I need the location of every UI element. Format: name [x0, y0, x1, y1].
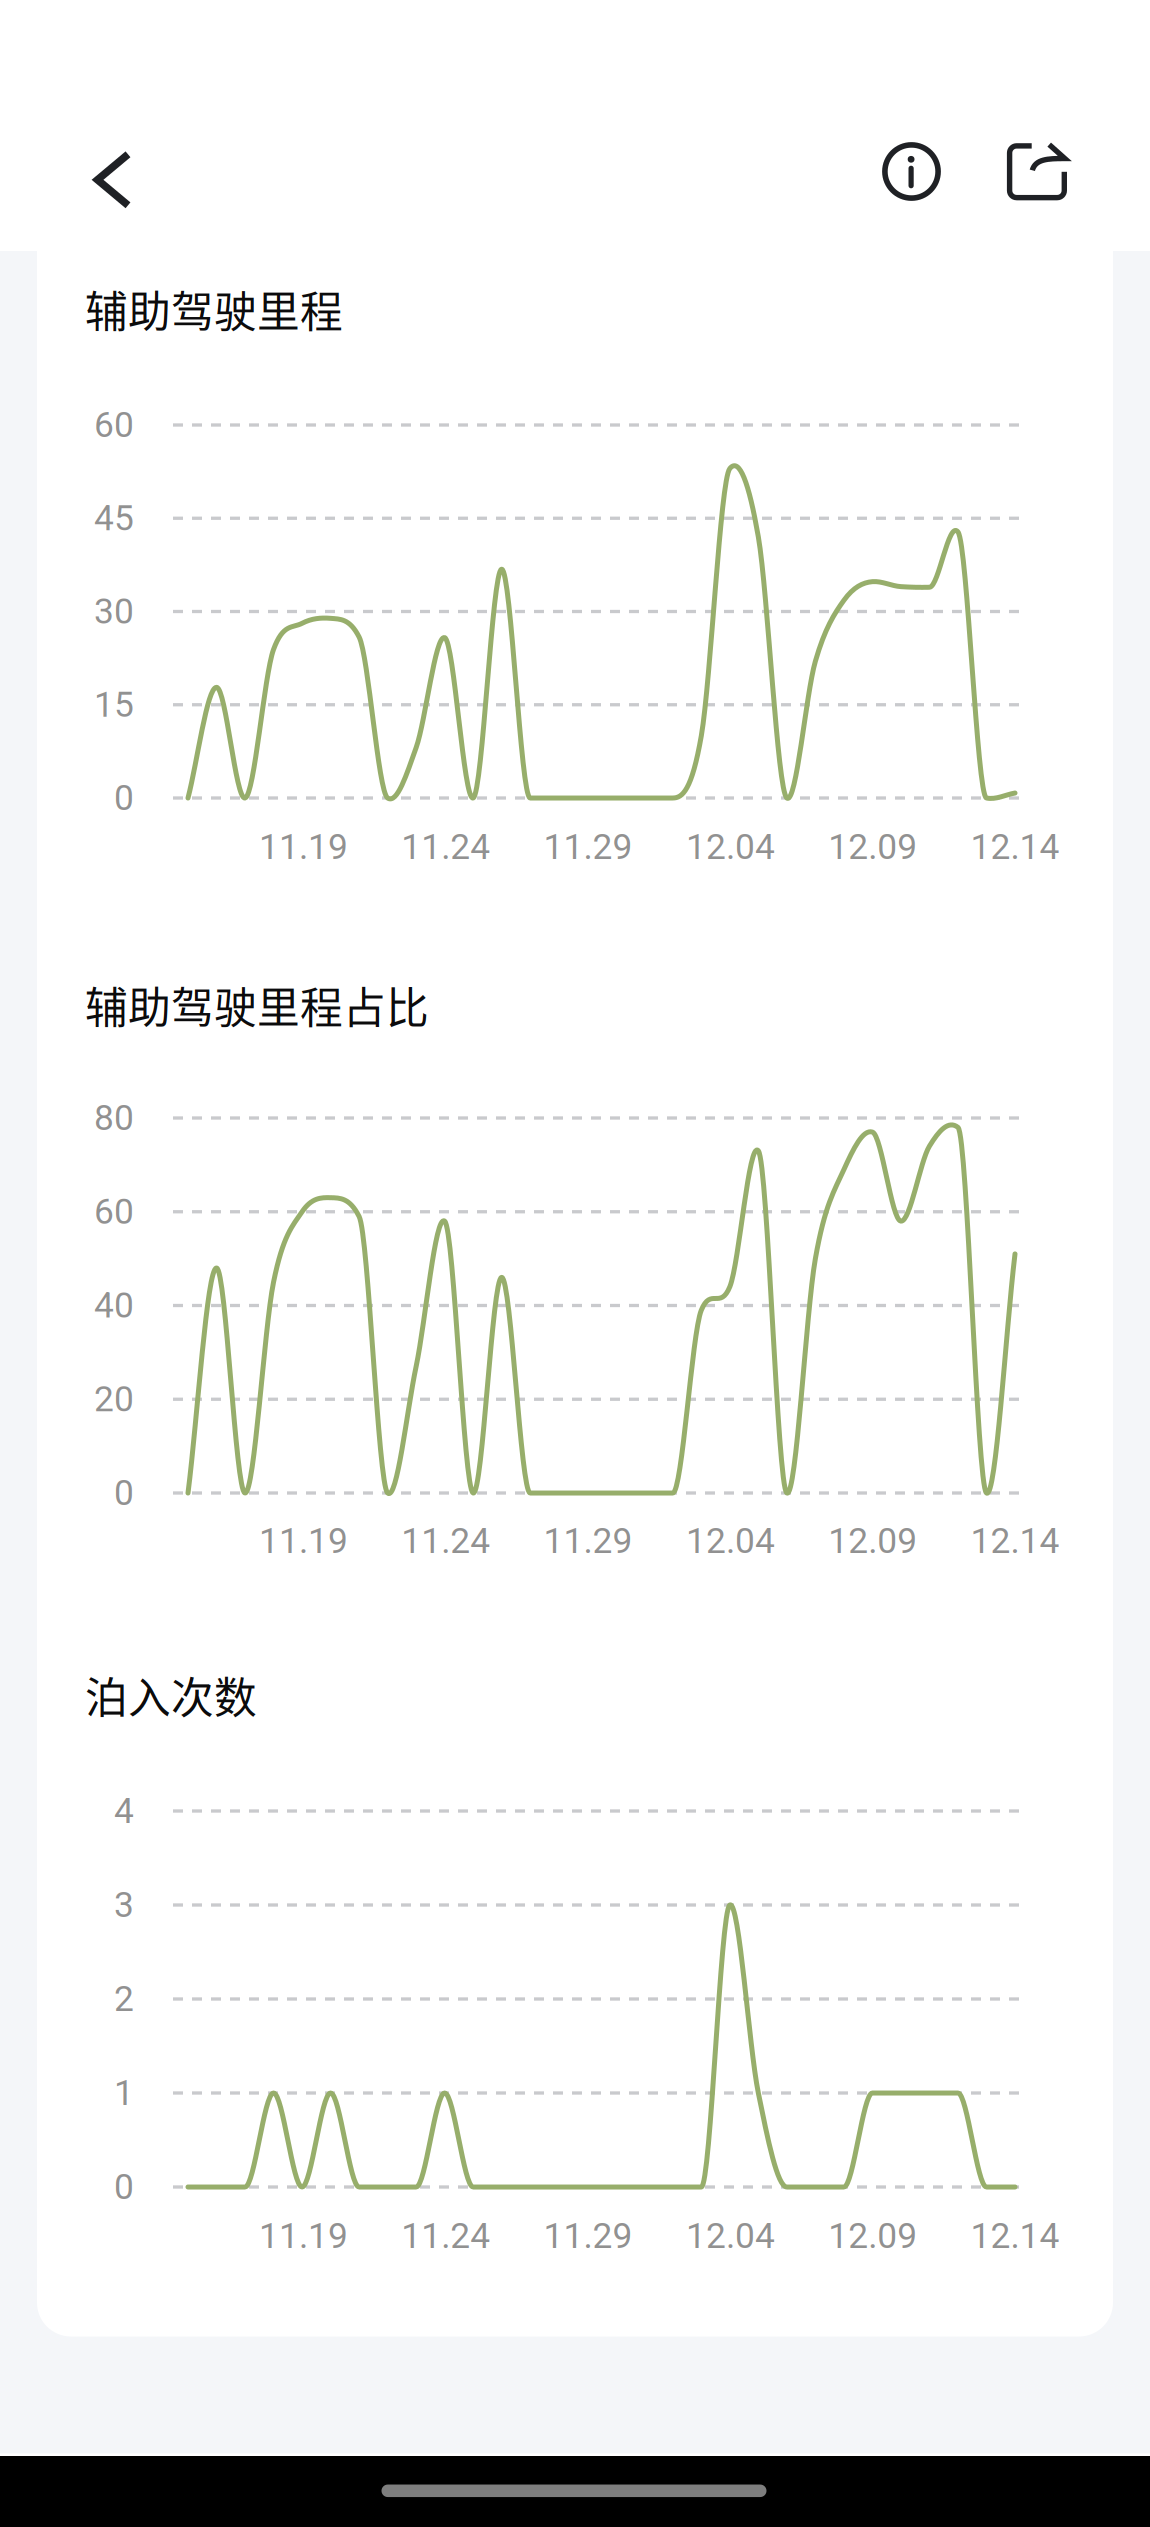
staticText: 40 — [94, 1285, 134, 1326]
staticText: 11.24 — [401, 826, 490, 868]
staticText: 45 — [94, 497, 134, 539]
staticText: 泊入次数 — [85, 1664, 257, 1726]
staticText: 60 — [94, 1191, 134, 1232]
staticText: 1 — [114, 2072, 134, 2114]
staticText: 11.24 — [401, 1520, 490, 1562]
staticText: 20 — [94, 1378, 134, 1420]
staticText: 15 — [94, 684, 134, 725]
staticText: 辅助驾驶里程占比 — [85, 974, 429, 1036]
staticText: 12.09 — [828, 826, 917, 868]
staticText: 12.14 — [970, 2215, 1059, 2257]
staticText: 11.19 — [259, 2215, 348, 2257]
staticText: 11.19 — [259, 826, 348, 868]
staticText: 12.04 — [686, 2215, 775, 2257]
staticText: 12.09 — [828, 2215, 917, 2257]
button[interactable]: Information — [881, 141, 941, 201]
staticText: 3 — [114, 1884, 134, 1926]
button[interactable]: Back — [93, 150, 133, 209]
staticText: 80 — [94, 1097, 134, 1139]
button[interactable]: Share — [1006, 143, 1068, 201]
staticText: 0 — [114, 777, 134, 819]
staticText: 11.24 — [401, 2215, 490, 2257]
staticText: 4 — [114, 1790, 134, 1832]
staticText: 60 — [94, 404, 134, 446]
staticText: 辅助驾驶里程 — [85, 278, 343, 340]
staticText: 12.14 — [970, 826, 1059, 868]
staticText: 11.29 — [544, 826, 633, 868]
staticText: 2 — [114, 1978, 134, 2020]
staticText: 30 — [94, 591, 134, 632]
staticText: 0 — [114, 2166, 134, 2208]
staticText: 12.14 — [970, 1520, 1059, 1562]
staticText: 12.09 — [828, 1520, 917, 1562]
staticText: 0 — [114, 1472, 134, 1514]
staticText: 11.19 — [259, 1520, 348, 1562]
staticText: 11.29 — [544, 1520, 633, 1562]
staticText: 11.29 — [544, 2215, 633, 2257]
staticText: 12.04 — [686, 1520, 775, 1562]
staticText: 12.04 — [686, 826, 775, 868]
